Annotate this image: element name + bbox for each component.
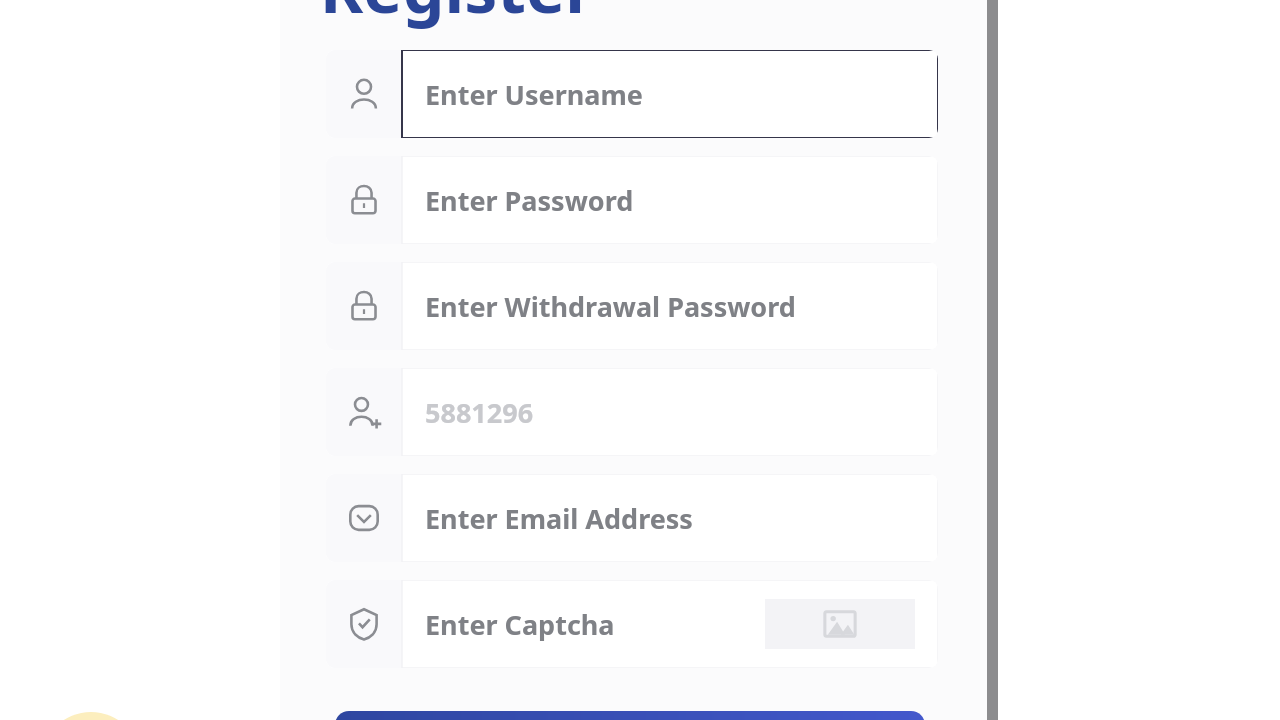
button[interactable]: Enter Captcha [326, 580, 938, 668]
staticText: 5881296 [425, 394, 534, 431]
button[interactable]: Enter Withdrawal Password [326, 262, 938, 350]
staticText: Enter Username [425, 76, 643, 113]
button[interactable]: Enter Username [326, 50, 938, 138]
staticText: Enter Email Address [425, 500, 693, 537]
staticText: Register [320, 0, 595, 32]
button[interactable]: Enter Email Address [326, 474, 938, 562]
staticText: Enter Captcha [425, 606, 615, 643]
button[interactable]: Submit registration [335, 711, 925, 720]
button[interactable]: Captcha image [765, 599, 915, 649]
button[interactable]: 5881296 [326, 368, 938, 456]
staticText: Enter Withdrawal Password [425, 288, 796, 325]
staticText: Enter Password [425, 182, 634, 219]
button[interactable]: Enter Password [326, 156, 938, 244]
